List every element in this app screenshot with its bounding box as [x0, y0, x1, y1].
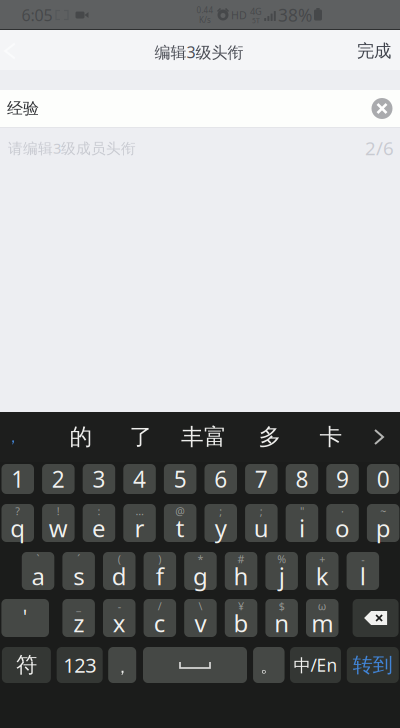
staticText: ´	[77, 552, 80, 566]
button[interactable]: 符	[2, 647, 51, 683]
staticText: h	[234, 560, 249, 592]
button[interactable]: "	[286, 504, 318, 542]
button[interactable]: ?	[1, 504, 34, 542]
button[interactable]: Space	[143, 647, 247, 683]
staticText: m	[311, 607, 333, 639]
button[interactable]: ，	[108, 647, 136, 683]
staticText: -	[118, 599, 121, 613]
staticText: ω	[318, 599, 327, 613]
button[interactable]: 了	[114, 414, 168, 460]
staticText: 8	[295, 464, 308, 494]
staticText: 丰富	[181, 423, 227, 451]
button[interactable]: )	[144, 552, 176, 590]
staticText: 123	[63, 652, 96, 678]
staticText: ¥	[238, 599, 244, 613]
button[interactable]: 5	[164, 464, 196, 494]
staticText: @	[175, 504, 185, 518]
staticText: u	[254, 512, 269, 544]
button[interactable]: 转到	[347, 647, 399, 683]
staticText: $	[279, 599, 285, 613]
button[interactable]: '	[1, 599, 49, 637]
staticText: ·	[341, 504, 344, 518]
button[interactable]: 123	[57, 647, 103, 683]
button[interactable]: 丰富	[173, 414, 235, 460]
staticText: ，	[5, 427, 21, 447]
staticText: o	[335, 512, 350, 544]
staticText: 4	[133, 464, 146, 494]
button[interactable]: :	[83, 504, 115, 542]
button[interactable]: 8	[286, 464, 318, 494]
staticText: 编辑3级头衔	[154, 41, 243, 63]
button[interactable]: -	[103, 599, 135, 637]
staticText: 2	[52, 464, 65, 494]
staticText: '	[23, 603, 28, 629]
button[interactable]: 9	[326, 464, 359, 494]
button[interactable]: 卡	[304, 414, 358, 460]
staticText: `	[36, 552, 39, 566]
button[interactable]: 1	[1, 464, 34, 494]
button[interactable]: 4	[123, 464, 156, 494]
button[interactable]: ´	[62, 552, 95, 590]
button[interactable]: \	[184, 599, 217, 637]
staticText: _	[76, 599, 81, 613]
button[interactable]: +	[306, 552, 338, 590]
button[interactable]: ~	[367, 504, 399, 542]
staticText: 9	[336, 464, 349, 494]
button[interactable]: (	[103, 552, 135, 590]
button[interactable]: @	[164, 504, 196, 542]
button[interactable]: …	[123, 504, 156, 542]
staticText: l	[360, 560, 366, 592]
button[interactable]: _	[62, 599, 95, 637]
button[interactable]: Clear text	[367, 93, 397, 123]
staticText: 2/6	[365, 136, 394, 160]
button[interactable]: 中/En	[290, 647, 341, 683]
button[interactable]: *	[184, 552, 217, 590]
staticText: w	[49, 512, 68, 544]
button[interactable]: Backspace	[353, 599, 399, 637]
button[interactable]: 3	[83, 464, 115, 494]
button[interactable]: !	[42, 504, 75, 542]
button[interactable]: 7	[245, 464, 278, 494]
staticText: f	[156, 560, 164, 592]
button[interactable]: ·	[326, 504, 359, 542]
staticText: :	[97, 504, 100, 518]
staticText: 中/En	[293, 653, 337, 676]
button[interactable]: /	[144, 599, 176, 637]
button[interactable]: 0	[367, 464, 399, 494]
staticText: c	[154, 607, 166, 639]
button[interactable]: ;	[245, 504, 278, 542]
button[interactable]: ω	[306, 599, 338, 637]
staticText: #	[238, 552, 245, 566]
staticText: 6:05	[21, 4, 52, 26]
button[interactable]: ¥	[225, 599, 257, 637]
staticText: 7	[255, 464, 268, 494]
staticText: /	[158, 599, 162, 613]
staticText: ;	[219, 504, 222, 518]
button[interactable]: %	[265, 552, 298, 590]
staticText: +	[319, 552, 325, 566]
button[interactable]: 的	[54, 414, 108, 460]
button[interactable]: 多	[243, 414, 297, 460]
staticText: 的	[69, 423, 92, 451]
button[interactable]: 经验	[0, 90, 350, 127]
staticText: i	[299, 512, 305, 544]
button[interactable]: ;	[204, 504, 237, 542]
staticText: e	[92, 512, 106, 544]
button[interactable]: 。	[253, 647, 285, 683]
staticText: 完成	[357, 40, 391, 62]
button[interactable]: $	[265, 599, 298, 637]
button[interactable]: Insert comma	[0, 417, 28, 457]
button[interactable]: 完成	[352, 31, 396, 71]
staticText: ;	[260, 504, 263, 518]
button[interactable]: -	[347, 552, 379, 590]
button[interactable]: #	[225, 552, 257, 590]
button[interactable]: `	[22, 552, 54, 590]
button[interactable]: More candidates	[360, 414, 398, 460]
button[interactable]: 6	[204, 464, 237, 494]
staticText: 38%	[278, 3, 312, 26]
button[interactable]: 2	[42, 464, 75, 494]
staticText: 了	[129, 423, 152, 451]
staticText: j	[279, 560, 285, 592]
staticText: b	[234, 607, 249, 639]
